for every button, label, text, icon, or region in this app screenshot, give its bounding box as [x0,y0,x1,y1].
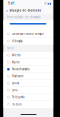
button[interactable]: Back [6,7,8,14]
staticText: Intensidade de chamada [7,15,40,19]
staticText: Alerta [12,53,20,57]
staticText: Sonar [12,81,19,85]
button[interactable]: Radiante [3,73,53,80]
staticText: ıl ◗ ▮ [44,2,50,5]
staticText: 9:41 [8,2,15,5]
staticText: Tri-tom [12,103,21,106]
staticText: Vibração [12,39,23,43]
button[interactable]: Alerta [3,52,53,59]
staticText: Nova chamada [12,67,29,71]
button[interactable]: Decrescer com o tempo [3,31,53,38]
button[interactable]: Sino [3,87,53,94]
button[interactable]: Vibração [3,38,53,45]
button[interactable]: Telégrafo [3,94,53,101]
staticText: Setor [7,46,14,50]
staticText: Telégrafo [12,95,25,99]
button[interactable]: Tri-tom [3,101,53,108]
staticText: Apito [12,60,20,64]
staticText: Situação de chamada [9,9,41,12]
staticText: ‹ [6,7,8,14]
staticText: Radiante [12,74,24,78]
staticText: Decrescer com o tempo [12,32,44,36]
button[interactable]: Volume [3,21,53,31]
button[interactable]: Sonar [3,80,53,87]
staticText: Sino [12,88,18,92]
button[interactable]: Apito [3,59,53,66]
button[interactable]: Nova chamada [3,66,53,73]
